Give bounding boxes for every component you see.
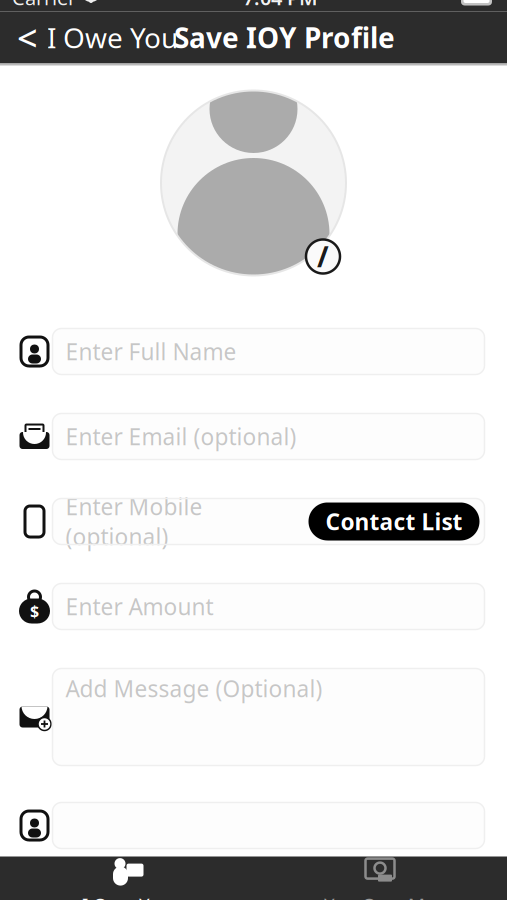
staticText: I Owe You	[82, 892, 172, 900]
staticText: Carrier	[12, 0, 76, 11]
staticText: $	[30, 600, 39, 622]
staticText: Save IOY Profile	[174, 19, 395, 56]
staticText: Add Message (Optional)	[65, 673, 322, 703]
staticText: <	[17, 14, 38, 61]
staticText: /	[317, 238, 329, 275]
button[interactable]: <	[0, 3, 178, 72]
staticText: 7:04 PM	[243, 0, 318, 11]
staticText: Enter Amount	[65, 591, 213, 621]
staticText: Enter Email (optional)	[65, 421, 296, 451]
staticText: You Owe Me	[324, 892, 436, 900]
staticText: Contact List	[325, 506, 462, 536]
staticText: I Owe You	[47, 19, 178, 56]
button[interactable]: I Owe You	[0, 856, 253, 900]
button[interactable]: You Owe Me	[253, 856, 506, 900]
button[interactable]: Edit profile photo	[161, 90, 346, 275]
staticText: Enter Full Name	[65, 336, 236, 366]
button[interactable]: Contact List	[308, 502, 479, 540]
staticText: Enter Mobile (optional)	[65, 491, 202, 552]
